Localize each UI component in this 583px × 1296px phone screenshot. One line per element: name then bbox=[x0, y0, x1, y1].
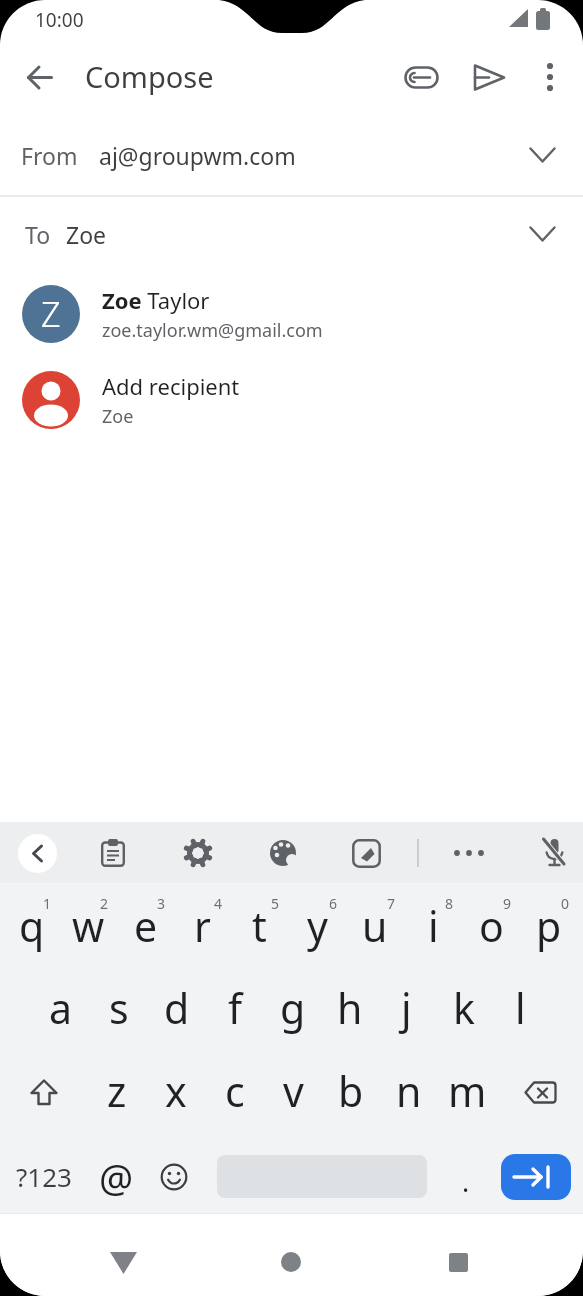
button[interactable] bbox=[101, 839, 125, 867]
button[interactable] bbox=[281, 1252, 301, 1272]
button[interactable]: g bbox=[264, 965, 321, 1047]
button[interactable]: w bbox=[60, 883, 117, 965]
button[interactable]: To bbox=[0, 197, 583, 271]
button[interactable] bbox=[473, 64, 507, 91]
staticText: Zoe bbox=[102, 404, 134, 429]
button[interactable] bbox=[453, 849, 485, 857]
staticText: u bbox=[362, 898, 388, 954]
button[interactable] bbox=[0, 1047, 87, 1130]
button[interactable]: y bbox=[288, 883, 346, 965]
staticText: w bbox=[72, 898, 105, 954]
staticText: 5 bbox=[271, 894, 280, 913]
button[interactable]: b bbox=[322, 1047, 380, 1130]
staticText: 6 bbox=[329, 894, 338, 913]
button[interactable]: p bbox=[520, 883, 578, 965]
staticText: 0 bbox=[561, 894, 570, 913]
button[interactable] bbox=[352, 839, 381, 868]
button[interactable]: n bbox=[380, 1047, 438, 1130]
staticText: x bbox=[165, 1063, 187, 1119]
button[interactable] bbox=[543, 62, 557, 92]
button[interactable]: d bbox=[148, 965, 206, 1047]
button[interactable] bbox=[27, 64, 53, 91]
staticText: 7 bbox=[387, 894, 396, 913]
button[interactable] bbox=[18, 834, 57, 873]
button[interactable]: f bbox=[206, 965, 264, 1047]
staticText: o bbox=[479, 898, 504, 954]
staticText: e bbox=[134, 898, 158, 954]
button[interactable] bbox=[110, 1252, 137, 1274]
button[interactable]: m bbox=[438, 1047, 496, 1130]
button[interactable]: l bbox=[492, 965, 549, 1047]
staticText: z bbox=[107, 1063, 127, 1119]
button[interactable]: k bbox=[435, 965, 492, 1047]
button[interactable]: o bbox=[462, 883, 520, 965]
button[interactable] bbox=[501, 1154, 571, 1200]
staticText: y bbox=[307, 898, 328, 954]
button[interactable]: t bbox=[231, 883, 288, 965]
button[interactable]: r bbox=[174, 883, 231, 965]
staticText: k bbox=[453, 980, 475, 1036]
staticText: 8 bbox=[445, 894, 454, 913]
button[interactable]: ?123 bbox=[0, 1130, 87, 1213]
button[interactable]: v bbox=[264, 1047, 322, 1130]
button[interactable] bbox=[449, 1253, 468, 1272]
button[interactable]: x bbox=[146, 1047, 205, 1130]
button[interactable]: From bbox=[0, 115, 583, 197]
staticText: . bbox=[462, 1163, 470, 1200]
staticText: m bbox=[448, 1063, 487, 1119]
button[interactable]: e bbox=[117, 883, 174, 965]
staticText: q bbox=[19, 898, 45, 954]
staticText: 4 bbox=[214, 894, 223, 913]
staticText: Compose bbox=[85, 57, 214, 96]
staticText: Z bbox=[41, 291, 61, 337]
staticText: n bbox=[396, 1063, 422, 1119]
button[interactable]: c bbox=[205, 1047, 264, 1130]
button[interactable]: a bbox=[32, 965, 90, 1047]
button[interactable] bbox=[540, 838, 567, 868]
staticText: 9 bbox=[503, 894, 512, 913]
staticText: To bbox=[25, 219, 51, 250]
staticText: d bbox=[164, 980, 190, 1036]
button[interactable]: Z bbox=[0, 271, 583, 357]
button[interactable]: s bbox=[90, 965, 148, 1047]
button[interactable] bbox=[184, 839, 212, 867]
staticText: p bbox=[536, 898, 562, 954]
button[interactable] bbox=[404, 66, 439, 89]
staticText: l bbox=[515, 980, 526, 1036]
button[interactable]: q bbox=[3, 883, 60, 965]
staticText: @ bbox=[99, 1151, 134, 1203]
staticText: j bbox=[401, 980, 412, 1036]
button[interactable]: i bbox=[404, 883, 462, 965]
staticText: b bbox=[338, 1063, 364, 1119]
staticText: Zoe Taylor bbox=[102, 285, 210, 315]
staticText: ?123 bbox=[16, 1159, 72, 1194]
button[interactable]: u bbox=[346, 883, 404, 965]
button[interactable]: j bbox=[378, 965, 435, 1047]
staticText: aj@groupwm.com bbox=[99, 140, 296, 171]
staticText: g bbox=[280, 980, 306, 1036]
button[interactable] bbox=[269, 839, 297, 867]
button[interactable] bbox=[145, 1130, 203, 1213]
staticText: 1 bbox=[43, 894, 52, 913]
button[interactable]: @ bbox=[87, 1130, 145, 1213]
staticText: Add recipient bbox=[102, 371, 240, 401]
staticText: Zoe bbox=[66, 219, 107, 250]
button[interactable]: Add recipient bbox=[0, 357, 583, 443]
staticText: r bbox=[194, 898, 211, 954]
staticText: 10:00 bbox=[35, 7, 84, 33]
button[interactable] bbox=[496, 1047, 583, 1130]
staticText: t bbox=[252, 898, 267, 954]
button[interactable] bbox=[203, 1130, 437, 1213]
button[interactable]: . bbox=[437, 1130, 495, 1213]
staticText: v bbox=[283, 1063, 304, 1119]
staticText: f bbox=[228, 980, 243, 1036]
staticText: 3 bbox=[157, 894, 166, 913]
staticText: c bbox=[225, 1063, 245, 1119]
staticText: h bbox=[337, 980, 363, 1036]
staticText: zoe.taylor.wm@gmail.com bbox=[102, 318, 323, 343]
staticText: i bbox=[428, 898, 439, 954]
staticText: a bbox=[49, 980, 73, 1036]
button[interactable]: h bbox=[321, 965, 378, 1047]
staticText: s bbox=[109, 980, 129, 1036]
button[interactable]: z bbox=[87, 1047, 146, 1130]
